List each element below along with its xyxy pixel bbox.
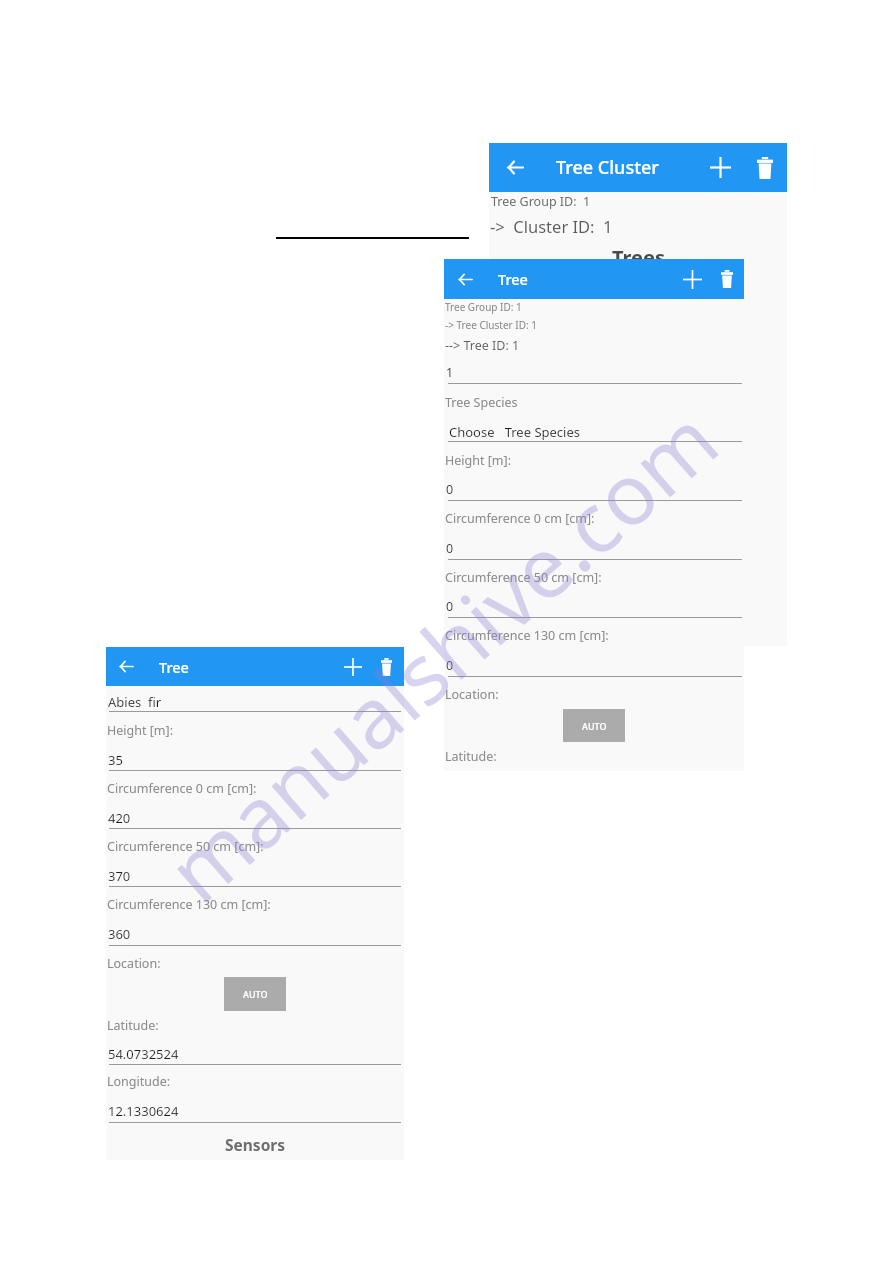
staticText: Tree <box>498 269 528 289</box>
staticText: 360 <box>108 925 131 943</box>
button[interactable]: 370 <box>109 861 401 887</box>
staticText: -> Tree Cluster ID: 1 <box>445 318 537 332</box>
staticText: 0 <box>446 657 454 674</box>
staticText: 1 <box>446 364 454 381</box>
staticText: Tree Species <box>445 394 518 411</box>
staticText: Height [m]: <box>107 722 173 739</box>
button[interactable]: 0 <box>448 650 742 677</box>
button[interactable]: Back <box>491 143 540 192</box>
button[interactable]: Add <box>333 647 372 686</box>
button[interactable]: Delete <box>707 259 747 299</box>
staticText: manualshive.com <box>142 382 737 923</box>
staticText: Tree Cluster <box>556 155 659 180</box>
button[interactable]: Add <box>672 259 712 299</box>
button[interactable]: Abies fir <box>109 688 401 712</box>
staticText: Choose Tree Species <box>449 423 581 441</box>
button[interactable]: AUTO <box>224 977 286 1011</box>
button[interactable]: 12.1330624 <box>109 1096 401 1123</box>
button[interactable]: 0 <box>448 591 742 618</box>
staticText: 370 <box>108 867 131 885</box>
staticText: 420 <box>108 809 131 827</box>
staticText: Tree <box>159 657 189 677</box>
staticText: Longitude: <box>107 1073 171 1090</box>
staticText: Sensors <box>225 1134 286 1155</box>
button[interactable]: Delete <box>367 647 406 686</box>
staticText: 54.0732524 <box>108 1045 179 1063</box>
button[interactable]: Back <box>445 259 485 299</box>
button[interactable]: 360 <box>109 919 401 946</box>
button[interactable]: 0 <box>448 474 742 501</box>
staticText: 35 <box>108 751 123 769</box>
button[interactable]: Choose Tree Species <box>448 416 742 442</box>
button[interactable]: Delete <box>740 143 789 192</box>
button[interactable]: AUTO <box>563 709 625 742</box>
button[interactable]: Back <box>107 647 146 686</box>
staticText: Location: <box>107 955 161 972</box>
button[interactable]: 420 <box>109 803 401 829</box>
staticText: Circumference 130 cm [cm]: <box>107 896 271 913</box>
staticText: AUTO <box>243 988 268 1000</box>
staticText: 12.1330624 <box>108 1102 179 1120</box>
staticText: Latitude: <box>445 748 497 765</box>
staticText: --> Tree ID: 1 <box>445 337 520 354</box>
staticText: 0 <box>446 598 454 615</box>
button[interactable]: 35 <box>109 745 401 771</box>
button[interactable]: Sensors <box>106 1126 404 1162</box>
staticText: Tree Group ID: 1 <box>445 300 522 314</box>
staticText: Circumference 50 cm [cm]: <box>445 569 602 586</box>
staticText: Latitude: <box>107 1017 159 1034</box>
staticText: Circumference 0 cm [cm]: <box>107 780 257 797</box>
button[interactable]: 0 <box>448 533 742 560</box>
staticText: Trees <box>612 244 665 271</box>
staticText: Abies fir <box>108 693 162 711</box>
staticText: 0 <box>446 540 454 557</box>
staticText: -> Cluster ID: 1 <box>490 215 613 237</box>
staticText: 0 <box>446 481 454 498</box>
staticText: Height [m]: <box>445 452 511 469</box>
staticText: Location: <box>445 686 499 703</box>
button[interactable]: Add <box>696 143 745 192</box>
button[interactable]: 54.0732524 <box>109 1038 401 1065</box>
staticText: Circumference 130 cm [cm]: <box>445 627 609 644</box>
staticText: Circumference 50 cm [cm]: <box>107 838 264 855</box>
staticText: Circumference 0 cm [cm]: <box>445 510 595 527</box>
staticText: AUTO <box>582 720 607 732</box>
staticText: Tree Group ID: 1 <box>491 193 591 210</box>
button[interactable]: 1 <box>448 357 742 384</box>
